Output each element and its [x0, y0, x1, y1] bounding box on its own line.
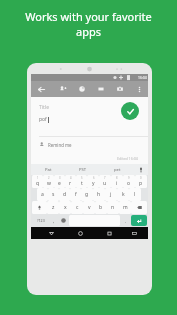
button[interactable]: Backspace — [131, 201, 147, 214]
staticText: c — [76, 204, 79, 211]
staticText: k — [122, 191, 125, 198]
button[interactable]: 8 — [111, 175, 123, 188]
button[interactable]: , — [49, 215, 58, 226]
button[interactable]: j — [105, 188, 117, 201]
button[interactable]: a — [37, 188, 48, 201]
button[interactable]: Hide keyboard — [125, 227, 143, 239]
staticText: y — [92, 180, 95, 187]
staticText: h — [97, 191, 101, 198]
staticText: o — [127, 180, 131, 187]
staticText: PST — [79, 167, 87, 173]
staticText: Remind me — [48, 142, 72, 148]
button[interactable]: Shift — [32, 201, 47, 214]
staticText: r — [69, 180, 72, 187]
staticText: pof — [39, 116, 47, 123]
staticText: 7 — [104, 176, 106, 180]
staticText: f — [75, 191, 77, 198]
staticText: pet — [114, 167, 121, 173]
staticText: g — [85, 191, 89, 198]
button[interactable]: v — [83, 201, 95, 214]
staticText: l — [134, 191, 136, 198]
button[interactable]: Enter — [131, 215, 147, 226]
button[interactable]: pet — [100, 164, 134, 175]
button[interactable]: 9 — [123, 175, 135, 188]
button[interactable]: z — [47, 201, 59, 214]
staticText: ?123 — [37, 218, 45, 223]
staticText: 2 — [48, 176, 50, 180]
staticText: u — [103, 180, 107, 187]
staticText: 8 — [116, 176, 118, 180]
button[interactable]: 7 — [99, 175, 111, 188]
staticText: d — [63, 191, 67, 198]
staticText: n — [111, 204, 115, 211]
staticText: Edited 16:04 — [117, 156, 138, 161]
button[interactable]: Remind me — [39, 142, 72, 148]
staticText: 0 — [140, 176, 142, 180]
button[interactable]: 1 — [32, 175, 43, 188]
button[interactable]: Recents — [100, 227, 118, 239]
button[interactable]: . — [121, 215, 130, 226]
button[interactable]: ?123 — [32, 215, 49, 226]
staticText: p — [139, 180, 143, 187]
button[interactable]: c — [71, 201, 83, 214]
staticText: e — [58, 180, 61, 187]
staticText: v — [88, 204, 91, 211]
button[interactable]: PST — [66, 164, 100, 175]
staticText: w — [47, 180, 51, 187]
button[interactable]: Back — [42, 227, 60, 239]
button[interactable]: Label — [94, 81, 108, 97]
button[interactable]: Back — [31, 81, 51, 97]
button[interactable]: More options — [132, 81, 146, 97]
button[interactable]: Voice input — [134, 164, 148, 175]
button[interactable]: Add collaborator — [56, 81, 70, 97]
staticText: x — [64, 204, 67, 211]
staticText: 3 — [59, 176, 61, 180]
staticText: z — [52, 204, 55, 211]
staticText: Title — [39, 104, 49, 111]
button[interactable]: g — [81, 188, 93, 201]
button[interactable]: 4 — [65, 175, 76, 188]
staticText: i — [116, 180, 118, 187]
button[interactable]: s — [48, 188, 59, 201]
button[interactable]: f — [70, 188, 81, 201]
staticText: j — [110, 191, 112, 198]
button[interactable]: Home — [71, 227, 89, 239]
button[interactable]: Done — [121, 102, 139, 120]
staticText: Works with your favorite apps — [14, 9, 163, 39]
staticText: Pat — [45, 167, 52, 173]
staticText: 4 — [70, 176, 72, 180]
button[interactable]: 6 — [87, 175, 99, 188]
button[interactable]: h — [93, 188, 105, 201]
staticText: 5 — [81, 176, 83, 180]
button[interactable]: 5 — [76, 175, 87, 188]
staticText: 16:04 — [138, 75, 147, 80]
button[interactable]: Camera — [113, 81, 127, 97]
staticText: q — [36, 180, 40, 187]
staticText: s — [52, 191, 55, 198]
staticText: t — [81, 180, 83, 187]
button[interactable]: d — [59, 188, 70, 201]
button[interactable]: m — [119, 201, 131, 214]
button[interactable]: Color palette — [75, 81, 89, 97]
button[interactable]: b — [95, 201, 107, 214]
staticText: m — [123, 204, 128, 211]
button[interactable]: x — [59, 201, 71, 214]
button[interactable]: Switch language — [58, 215, 68, 226]
staticText: 6 — [93, 176, 95, 180]
staticText: 9 — [128, 176, 130, 180]
button[interactable]: l — [129, 188, 141, 201]
staticText: b — [99, 204, 103, 211]
button[interactable]: 0 — [135, 175, 147, 188]
button[interactable]: 2 — [43, 175, 54, 188]
staticText: a — [41, 191, 44, 198]
staticText: , — [53, 218, 55, 224]
button[interactable]: Pat — [31, 164, 66, 175]
button[interactable]: n — [107, 201, 119, 214]
button[interactable]: 3 — [54, 175, 65, 188]
staticText: 1 — [37, 176, 39, 180]
staticText: . — [125, 218, 127, 224]
button[interactable]: k — [117, 188, 129, 201]
